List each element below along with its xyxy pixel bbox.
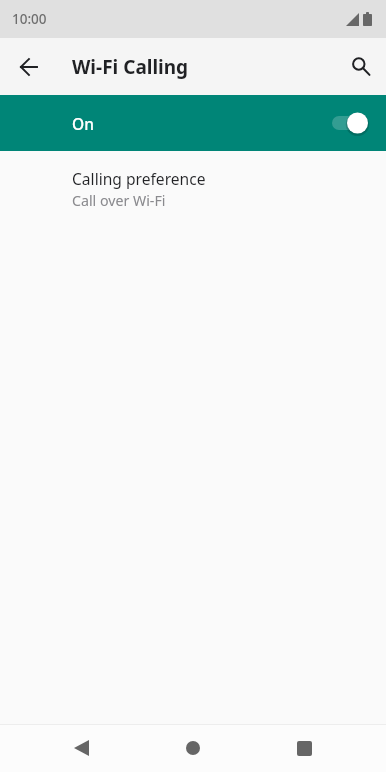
button[interactable]: Navigate back [33, 724, 129, 772]
staticText: Calling preference [72, 168, 206, 189]
staticText: Call over Wi-Fi [72, 191, 166, 210]
staticText: On [72, 113, 94, 134]
button[interactable]: Back [8, 47, 48, 87]
button[interactable]: Recent apps [256, 724, 352, 772]
staticText: 10:00 [12, 10, 47, 28]
button[interactable]: Calling preference [0, 151, 386, 224]
staticText: Wi-Fi Calling [72, 54, 189, 80]
button[interactable]: Home [145, 724, 241, 772]
button[interactable]: On [0, 95, 386, 151]
button[interactable]: Search [341, 47, 381, 87]
